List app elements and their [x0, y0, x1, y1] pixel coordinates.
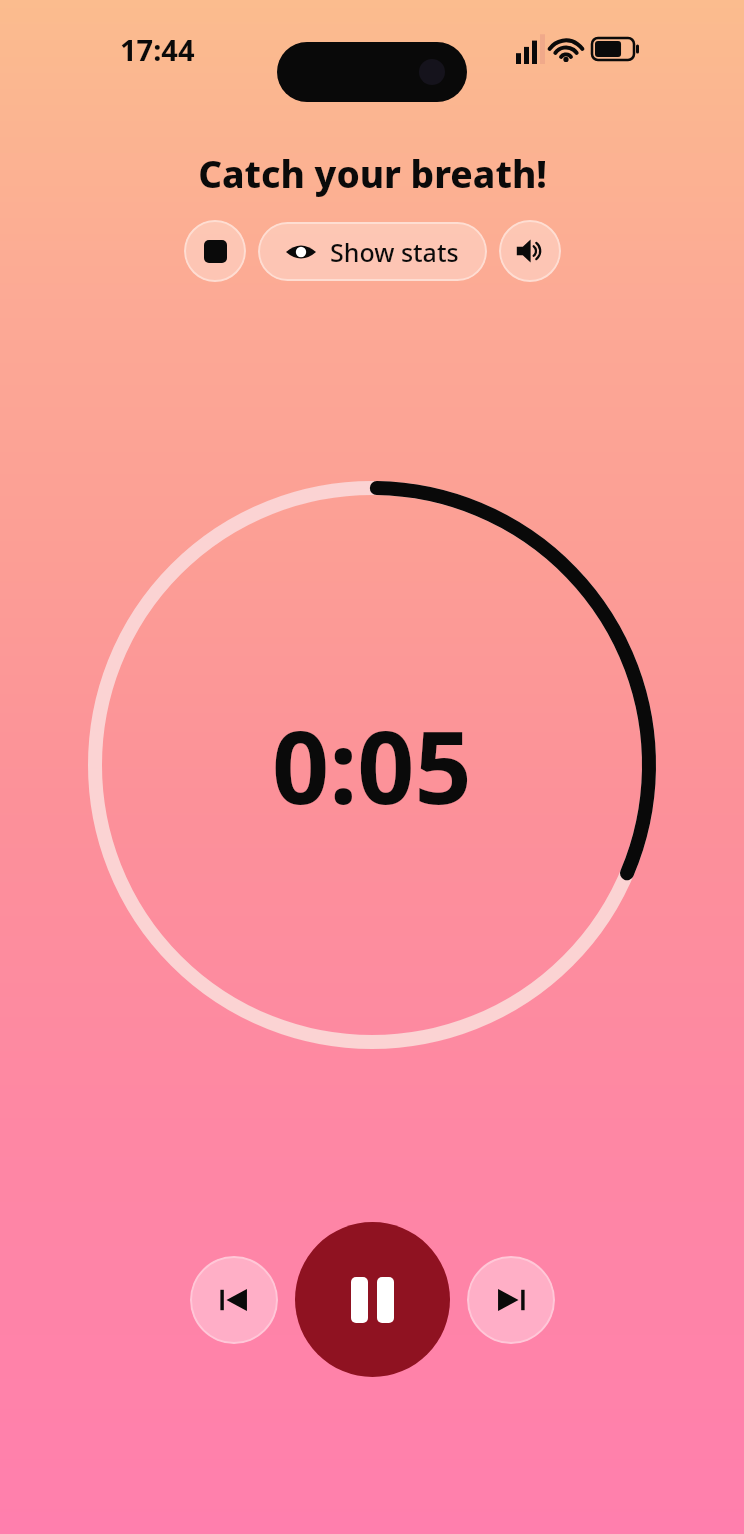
staticText: 0:05: [272, 697, 472, 833]
button[interactable]: Pause: [295, 1222, 450, 1377]
staticText: Show stats: [330, 235, 459, 269]
button[interactable]: Show stats: [258, 222, 487, 281]
button[interactable]: Next: [467, 1256, 555, 1344]
button[interactable]: Stop: [184, 220, 246, 282]
staticText: 17:44: [120, 30, 195, 69]
button[interactable]: Sound: [499, 220, 561, 282]
staticText: Catch your breath!: [198, 148, 547, 198]
button[interactable]: Previous: [190, 1256, 278, 1344]
